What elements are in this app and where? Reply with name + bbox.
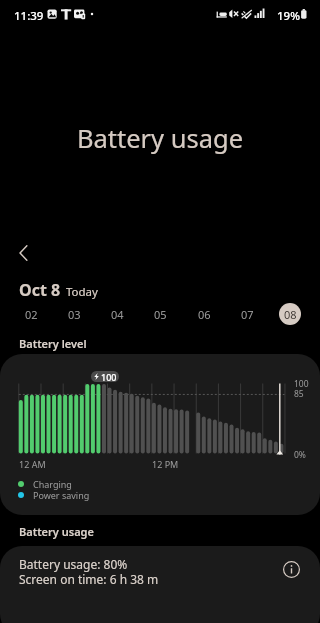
staticText: 05 bbox=[154, 307, 167, 322]
staticText: Today bbox=[66, 284, 98, 300]
button[interactable]: Battery usage: 80% bbox=[0, 546, 320, 623]
staticText: 12 AM bbox=[19, 458, 46, 470]
button[interactable]: 03 bbox=[63, 303, 85, 325]
staticText: 19% bbox=[277, 8, 300, 24]
staticText: 85 bbox=[294, 388, 304, 400]
staticText: 02 bbox=[25, 307, 38, 322]
staticText: Charging bbox=[33, 478, 72, 490]
button[interactable]: 05 bbox=[149, 303, 171, 325]
staticText: 0% bbox=[294, 449, 306, 461]
staticText: 08 bbox=[284, 307, 297, 322]
staticText: Battery usage: 80% bbox=[19, 556, 128, 572]
staticText: 100 bbox=[294, 378, 309, 390]
staticText: 11:39 bbox=[14, 8, 44, 24]
button[interactable]: 02 bbox=[20, 303, 42, 325]
staticText: 06 bbox=[198, 307, 211, 322]
staticText: Power saving bbox=[33, 489, 90, 501]
button[interactable]: 07 bbox=[236, 303, 258, 325]
staticText: Oct 8 bbox=[19, 279, 61, 301]
button[interactable]: 08 bbox=[279, 303, 301, 325]
staticText: 04 bbox=[111, 307, 124, 322]
staticText: 03 bbox=[68, 307, 81, 322]
button[interactable]: 06 bbox=[193, 303, 215, 325]
button[interactable]: Info bbox=[277, 555, 305, 583]
staticText: Battery usage bbox=[19, 524, 94, 539]
staticText: Screen on time: 6 h 38 m bbox=[19, 571, 159, 587]
staticText: 100 bbox=[101, 371, 117, 382]
staticText: Battery usage bbox=[0, 121, 320, 156]
staticText: 12 PM bbox=[152, 458, 179, 470]
button[interactable]: 04 bbox=[106, 303, 128, 325]
button[interactable]: Back bbox=[3, 232, 44, 273]
staticText: Battery level bbox=[19, 336, 87, 351]
staticText: 07 bbox=[241, 307, 254, 322]
